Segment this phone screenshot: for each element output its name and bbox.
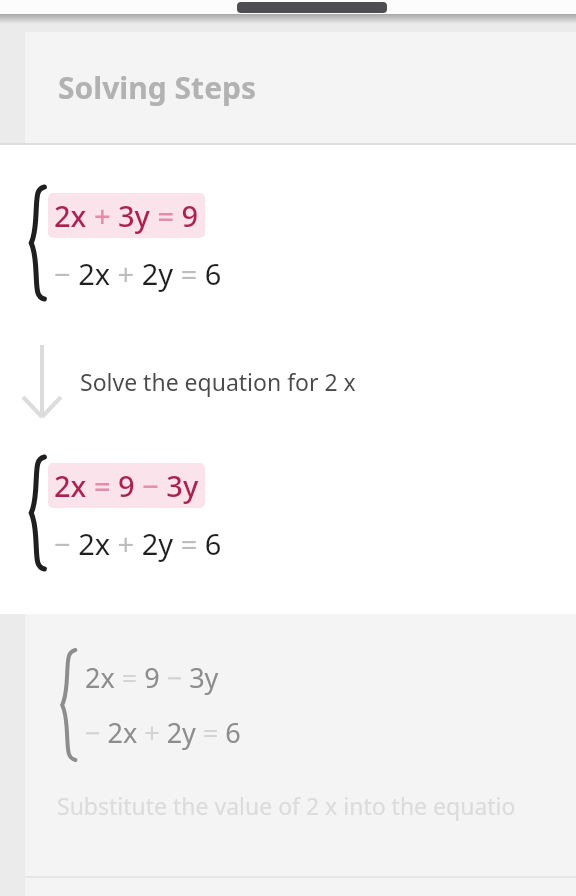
button[interactable]: 2x = 9 − 3y — [25, 614, 576, 876]
staticText: − 2x + 2y = 6 — [54, 254, 222, 293]
staticText: 2x = 9 − 3y — [85, 659, 219, 696]
staticText: 2x = 9 − 3y — [54, 466, 199, 505]
staticText: Solve the equation for 2 x — [80, 366, 356, 397]
button[interactable]: Drag handle — [237, 2, 387, 13]
staticText: 2x + 3y = 9 — [54, 196, 199, 235]
staticText: − 2x + 2y = 6 — [54, 524, 222, 563]
staticText: − 2x + 2y = 6 — [85, 714, 241, 751]
button[interactable]: 2x + 3y = 9 — [0, 145, 576, 614]
staticText: Substitute the value of 2 x into the equ… — [57, 790, 516, 821]
button[interactable]: Solving Steps — [25, 32, 576, 143]
staticText: Solving Steps — [58, 67, 257, 108]
